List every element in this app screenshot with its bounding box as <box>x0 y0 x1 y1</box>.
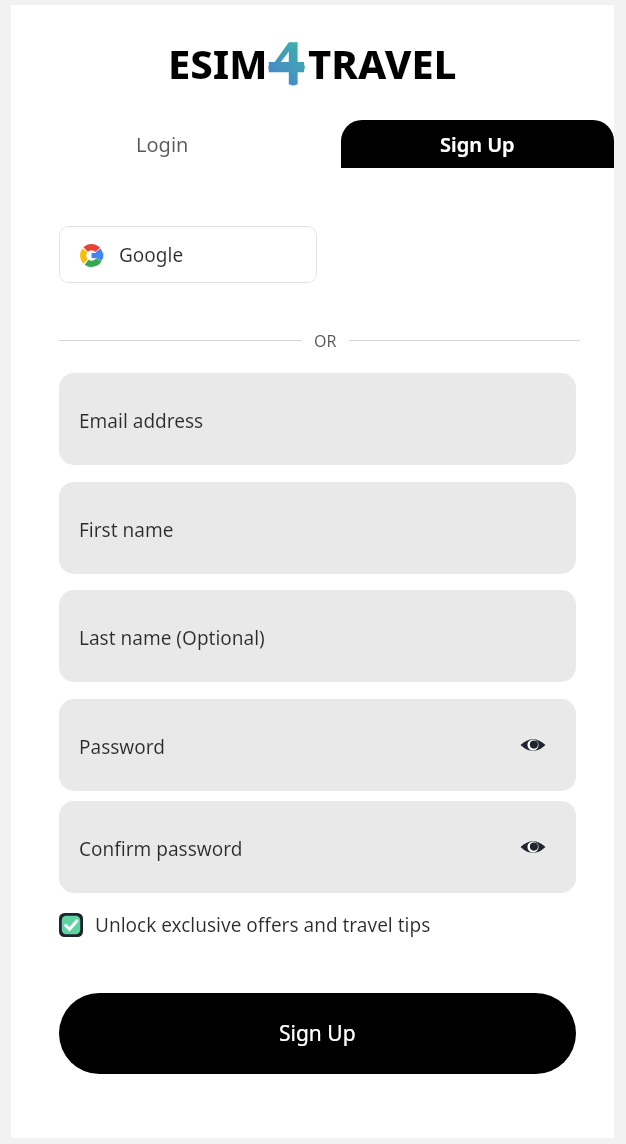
button[interactable]: Google <box>59 226 317 283</box>
staticText: Sign Up <box>440 131 515 158</box>
button[interactable]: Login <box>11 120 313 168</box>
staticText: Login <box>136 131 189 158</box>
staticText: Last name (Optional) <box>79 625 265 651</box>
button[interactable]: Email address <box>59 373 576 465</box>
button[interactable]: Last name (Optional) <box>59 590 576 682</box>
staticText: First name <box>79 517 174 543</box>
button[interactable]: Show password <box>516 728 550 762</box>
staticText: Unlock exclusive offers and travel tips <box>95 912 431 938</box>
button[interactable]: Sign Up <box>341 120 614 168</box>
staticText: TRAVEL <box>308 36 457 90</box>
staticText: Google <box>119 242 184 268</box>
staticText: Email address <box>79 408 204 434</box>
button[interactable]: Show password <box>516 830 550 864</box>
button[interactable]: Unlock exclusive offers and travel tips <box>59 905 584 945</box>
button[interactable]: Password <box>59 699 576 791</box>
button[interactable]: Sign Up <box>59 993 576 1074</box>
staticText: ESIM <box>168 36 268 90</box>
staticText: Password <box>79 734 165 760</box>
button[interactable]: Confirm password <box>59 801 576 893</box>
staticText: Confirm password <box>79 836 243 862</box>
button[interactable]: First name <box>59 482 576 574</box>
staticText: Sign Up <box>279 1019 356 1048</box>
staticText: OR <box>314 330 337 350</box>
